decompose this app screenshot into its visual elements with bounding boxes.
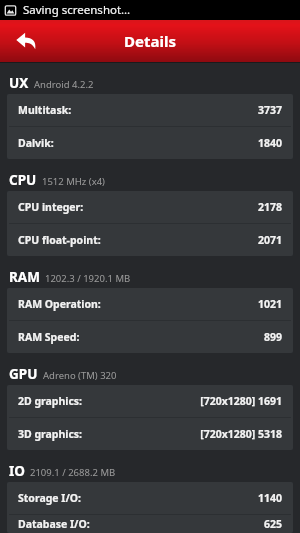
button[interactable]: Dalvik: bbox=[7, 127, 293, 159]
staticText: IO bbox=[9, 462, 25, 480]
button[interactable]: Storage I/O: bbox=[7, 482, 293, 514]
staticText: Saving screenshot… bbox=[23, 2, 131, 18]
staticText: Multitask: bbox=[18, 103, 72, 117]
button[interactable]: 2D graphics: bbox=[7, 385, 293, 417]
staticText: 3D graphics: bbox=[18, 427, 83, 441]
staticText: RAM Operation: bbox=[18, 297, 101, 311]
staticText: 2109.1 / 2688.2 MB bbox=[30, 466, 116, 479]
staticText: 2071 bbox=[257, 233, 282, 247]
staticText: 1140 bbox=[257, 491, 282, 505]
staticText: [720x1280] 1691 bbox=[200, 394, 282, 408]
staticText: RAM bbox=[9, 268, 40, 286]
staticText: 899 bbox=[263, 330, 282, 344]
button[interactable]: Back bbox=[0, 20, 52, 62]
button[interactable]: CPU integer: bbox=[7, 191, 293, 223]
staticText: Database I/O: bbox=[18, 517, 90, 531]
staticText: 1512 MHz (x4) bbox=[42, 175, 105, 188]
staticText: GPU bbox=[9, 365, 38, 383]
staticText: UX bbox=[9, 74, 29, 92]
staticText: Adreno (TM) 320 bbox=[43, 369, 117, 382]
staticText: 2D graphics: bbox=[18, 394, 83, 408]
staticText: CPU integer: bbox=[18, 200, 84, 214]
staticText: Storage I/O: bbox=[18, 491, 82, 505]
button[interactable]: RAM Operation: bbox=[7, 288, 293, 320]
staticText: 625 bbox=[263, 517, 282, 531]
button[interactable]: Database I/O: bbox=[7, 515, 293, 533]
button[interactable]: 3D graphics: bbox=[7, 418, 293, 450]
button[interactable]: Multitask: bbox=[7, 94, 293, 126]
button[interactable]: RAM Speed: bbox=[7, 321, 293, 353]
button[interactable]: CPU float-point: bbox=[7, 224, 293, 256]
staticText: [720x1280] 5318 bbox=[200, 427, 282, 441]
staticText: CPU float-point: bbox=[18, 233, 101, 247]
staticText: 1202.3 / 1920.1 MB bbox=[45, 272, 131, 285]
staticText: RAM Speed: bbox=[18, 330, 80, 344]
staticText: Dalvik: bbox=[18, 136, 54, 150]
staticText: Details bbox=[124, 31, 176, 51]
staticText: 1021 bbox=[257, 297, 282, 311]
staticText: 3737 bbox=[257, 103, 282, 117]
staticText: 2178 bbox=[257, 200, 282, 214]
staticText: 1840 bbox=[257, 136, 282, 150]
staticText: CPU bbox=[9, 171, 37, 189]
staticText: Android 4.2.2 bbox=[34, 78, 94, 91]
